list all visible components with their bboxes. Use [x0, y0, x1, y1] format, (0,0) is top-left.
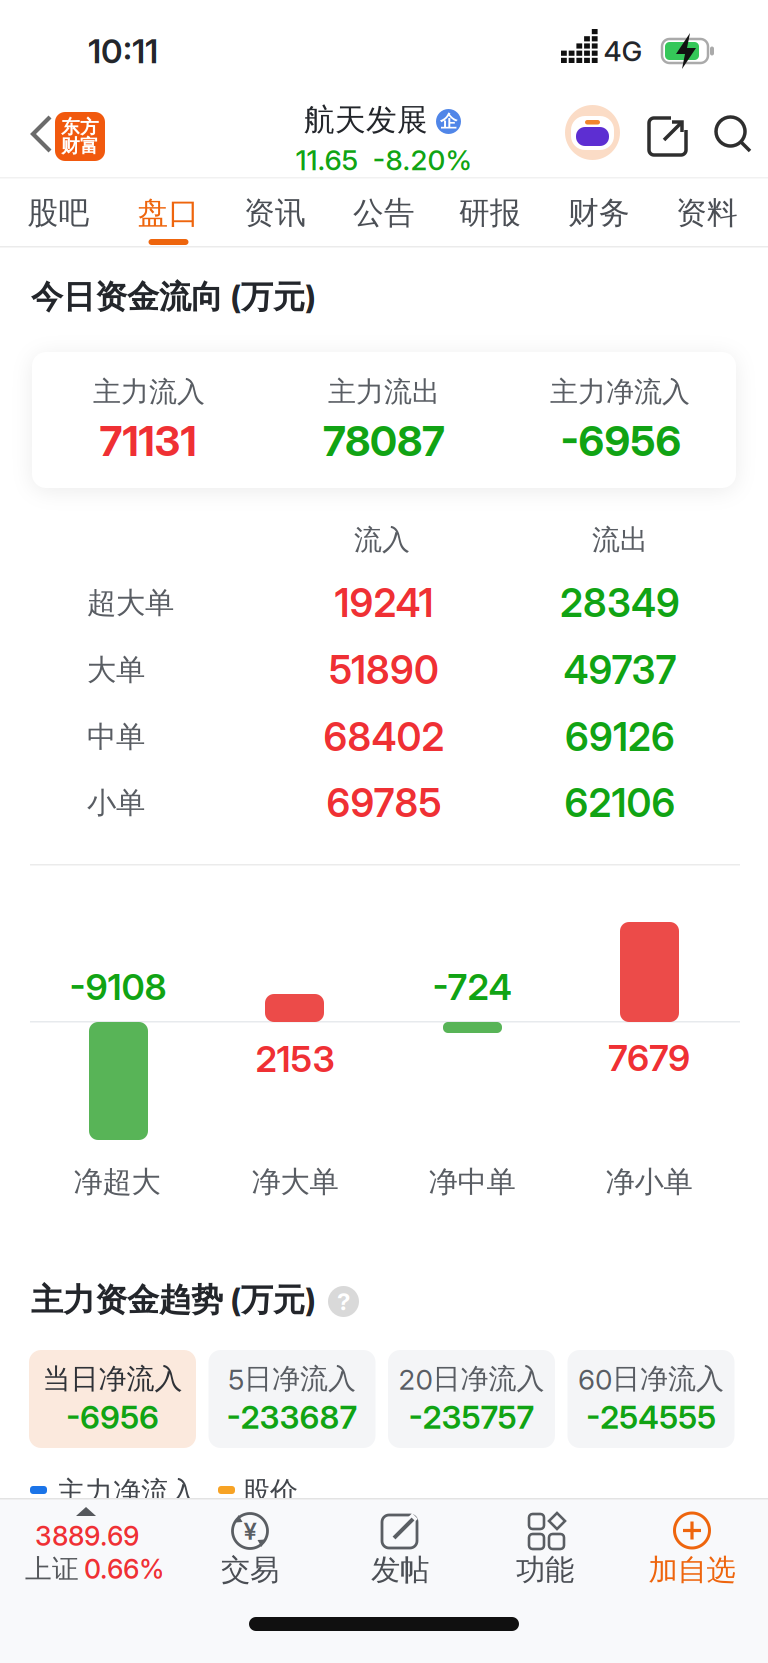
button[interactable]: 东方财富 [55, 112, 105, 161]
button[interactable]: 返回 [27, 113, 61, 161]
staticText: 企 [440, 111, 457, 132]
staticText: 流出 [592, 522, 648, 558]
staticText: 航天发展 [304, 101, 428, 139]
button[interactable]: 说明 [328, 1286, 359, 1317]
staticText: 大单 [87, 651, 145, 688]
staticText: 盘口 [137, 194, 199, 232]
button[interactable]: 5日净流入 [208, 1350, 375, 1448]
staticText: 0.66% [84, 1553, 164, 1585]
button[interactable]: 功能 [505, 1513, 585, 1585]
staticText: 小单 [87, 784, 145, 821]
staticText: 19241 [334, 580, 433, 626]
button[interactable]: 当日净流入 [29, 1350, 196, 1448]
staticText: 主力净流入 [550, 374, 690, 410]
staticText: 发帖 [371, 1551, 429, 1588]
staticText: 49737 [563, 647, 676, 693]
staticText: 净超大 [73, 1163, 160, 1200]
staticText: 68402 [323, 714, 444, 760]
staticText: 资料 [676, 194, 738, 232]
button[interactable]: 上证指数 [7, 1514, 167, 1594]
button[interactable]: 加自选 [652, 1513, 732, 1585]
staticText: 主力流出 [328, 374, 440, 410]
staticText: 流入 [354, 522, 410, 558]
staticText: 股价 [242, 1474, 298, 1510]
staticText: 62106 [564, 780, 675, 826]
staticText: -254555 [586, 1398, 716, 1436]
staticText: 60日净流入 [578, 1361, 724, 1397]
staticText: ¥ [243, 1516, 256, 1545]
button[interactable]: 60日净流入 [567, 1350, 734, 1448]
staticText: -6956 [560, 416, 681, 466]
staticText: 净大单 [251, 1163, 338, 1200]
staticText: 69126 [565, 714, 675, 760]
staticText: 当日净流入 [42, 1361, 182, 1397]
button[interactable]: 公告 [339, 189, 429, 245]
staticText: 71131 [99, 416, 196, 466]
button[interactable]: 20日净流入 [388, 1350, 555, 1448]
staticText: 财富 [61, 134, 99, 158]
button[interactable]: ¥ [210, 1513, 290, 1585]
staticText: 股吧 [27, 194, 89, 232]
staticText: 研报 [459, 194, 521, 232]
staticText: 上证 [25, 1552, 79, 1586]
staticText: 主力流入 [93, 374, 205, 410]
staticText: ? [337, 1287, 350, 1316]
staticText: 3889.69 [35, 1520, 139, 1552]
staticText: 69785 [326, 780, 441, 826]
staticText: 2153 [255, 1037, 334, 1081]
staticText: 今日资金流向 (万元) [31, 277, 316, 317]
staticText: 7679 [608, 1036, 690, 1080]
staticText: 51890 [329, 647, 439, 693]
staticText: 78087 [323, 416, 445, 466]
button[interactable]: 智能助手 [565, 105, 620, 160]
staticText: 东方 [61, 115, 99, 139]
button[interactable]: 资讯 [230, 189, 320, 245]
staticText: 4G [603, 34, 642, 68]
staticText: 公告 [353, 194, 415, 232]
staticText: 净小单 [605, 1163, 692, 1200]
button[interactable]: 财务 [554, 189, 644, 245]
button[interactable]: 股吧 [13, 189, 103, 245]
staticText: -235757 [408, 1398, 534, 1436]
staticText: 净中单 [428, 1163, 515, 1200]
staticText: 11.65 -8.20% [295, 143, 472, 177]
staticText: 主力资金趋势 (万元) [31, 1280, 316, 1320]
staticText: 主力净流入 [57, 1474, 197, 1510]
button[interactable]: 分享 [649, 118, 686, 155]
staticText: 5日净流入 [228, 1361, 356, 1397]
button[interactable]: 盘口 [123, 189, 213, 245]
button[interactable]: 发帖 [360, 1513, 440, 1585]
staticText: -9108 [69, 965, 166, 1009]
staticText: 资讯 [244, 194, 306, 232]
staticText: 28349 [560, 580, 680, 626]
staticText: 中单 [87, 718, 145, 755]
button[interactable]: 研报 [445, 189, 535, 245]
staticText: 10:11 [88, 31, 158, 71]
staticText: -724 [432, 965, 511, 1009]
staticText: 财务 [568, 194, 630, 232]
staticText: 功能 [516, 1551, 574, 1588]
staticText: 超大单 [87, 584, 174, 621]
staticText: 加自选 [648, 1551, 735, 1588]
staticText: 20日净流入 [398, 1361, 544, 1397]
button[interactable]: 搜索 [716, 117, 756, 157]
staticText: -6956 [66, 1398, 159, 1436]
button[interactable]: 资料 [662, 189, 752, 245]
staticText: -233687 [226, 1398, 357, 1436]
staticText: 交易 [221, 1551, 279, 1588]
